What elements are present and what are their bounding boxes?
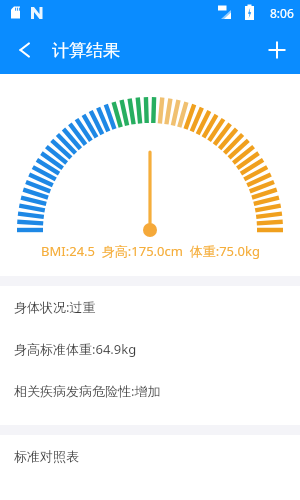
button[interactable]: 身体状况:过重 xyxy=(0,286,300,328)
staticText: 身体状况:过重 xyxy=(14,298,96,316)
button[interactable]: 身高标准体重:64.9kg xyxy=(0,328,300,370)
button[interactable]: 相关疾病发病危险性:增加 xyxy=(0,370,300,412)
button[interactable]: Add xyxy=(254,27,300,73)
staticText: 8:06 xyxy=(270,5,294,21)
staticText: 身高标准体重:64.9kg xyxy=(14,340,137,358)
button[interactable]: Back xyxy=(0,28,44,72)
button[interactable]: 标准对照表 xyxy=(0,435,300,477)
staticText: 计算结果 xyxy=(52,40,120,61)
staticText: BMI:24.5 身高:175.0cm 体重:75.0kg xyxy=(41,242,260,260)
staticText: 标准对照表 xyxy=(14,448,79,464)
staticText: 相关疾病发病危险性:增加 xyxy=(14,382,161,400)
